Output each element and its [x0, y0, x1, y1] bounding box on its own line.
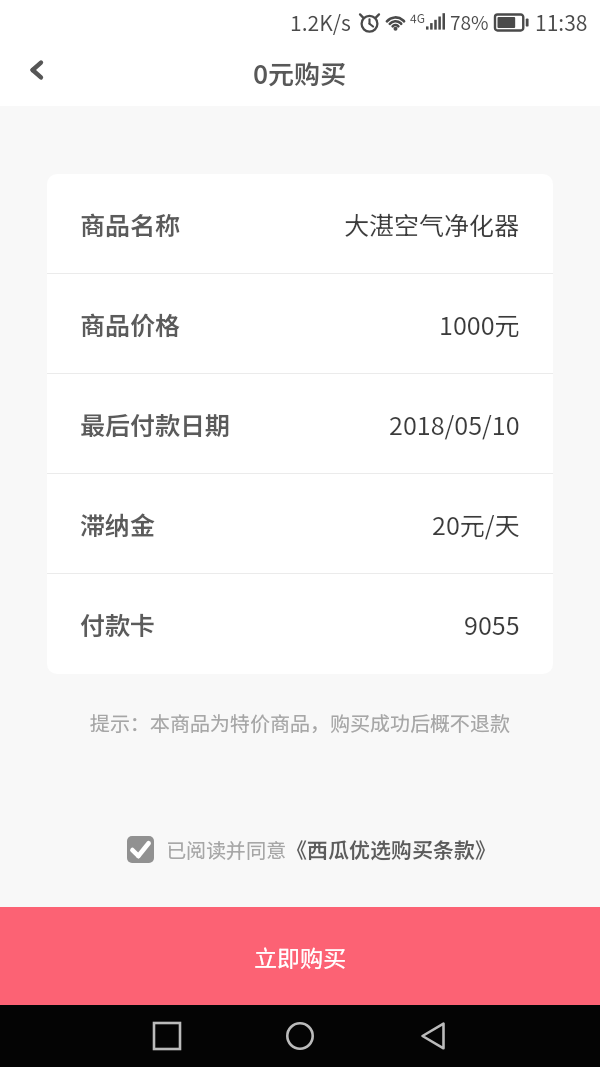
button[interactable]: 立即购买 — [0, 907, 600, 1005]
staticText: 立即购买 — [254, 940, 346, 973]
staticText: 大湛空气净化器 — [344, 206, 520, 242]
staticText: 78% — [450, 8, 489, 36]
staticText: 商品价格 — [80, 306, 181, 342]
staticText: 提示：本商品为特价商品，购买成功后概不退款 — [0, 708, 600, 737]
staticText: 付款卡 — [80, 606, 156, 642]
staticText: 11:38 — [535, 7, 588, 37]
staticText: 9055 — [464, 606, 520, 642]
staticText: 最后付款日期 — [80, 406, 231, 442]
staticText: 20元/天 — [432, 506, 520, 542]
staticText: 0元购买 — [253, 54, 347, 92]
staticText: 4G — [410, 9, 425, 26]
staticText: 2018/05/10 — [389, 406, 520, 442]
button[interactable]: Recent apps — [133, 1005, 201, 1067]
staticText: 已阅读并同意 — [166, 835, 286, 864]
button[interactable]: Agree to terms checkbox — [127, 836, 154, 863]
button[interactable]: Back — [13, 46, 61, 94]
button[interactable]: Back — [399, 1005, 467, 1067]
button[interactable]: Home — [266, 1005, 334, 1067]
staticText: 1.2K/s — [290, 7, 351, 37]
button[interactable]: 《西瓜优选购买条款》 — [286, 834, 496, 864]
staticText: 商品名称 — [80, 206, 181, 242]
staticText: 滞纳金 — [80, 506, 156, 542]
staticText: 1000元 — [439, 306, 520, 342]
